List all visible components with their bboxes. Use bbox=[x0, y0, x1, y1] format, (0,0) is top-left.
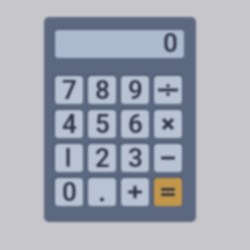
staticText: 8 bbox=[95, 76, 110, 103]
button[interactable]: Minus bbox=[154, 144, 182, 172]
button[interactable]: 8 bbox=[88, 76, 116, 104]
button[interactable]: Display bbox=[55, 30, 184, 58]
staticText: 2 bbox=[95, 144, 110, 171]
button[interactable]: Plus bbox=[121, 178, 149, 206]
button[interactable]: 9 bbox=[121, 76, 149, 104]
button[interactable]: 5 bbox=[88, 110, 116, 138]
staticText: 0 bbox=[163, 30, 178, 56]
button[interactable]: 6 bbox=[121, 110, 149, 138]
button[interactable]: 2 bbox=[88, 144, 116, 172]
staticText: 6 bbox=[128, 110, 143, 137]
button[interactable]: Divide bbox=[154, 76, 182, 104]
button[interactable]: 0 bbox=[55, 178, 83, 206]
button[interactable]: Equals bbox=[154, 178, 182, 206]
staticText: 7 bbox=[62, 76, 77, 103]
button[interactable]: 1 bbox=[55, 144, 83, 172]
button[interactable]: Decimal point bbox=[88, 178, 116, 206]
staticText: 5 bbox=[95, 110, 110, 137]
button[interactable]: 7 bbox=[55, 76, 83, 104]
button[interactable]: 3 bbox=[121, 144, 149, 172]
staticText: 0 bbox=[62, 178, 77, 205]
staticText: 4 bbox=[62, 110, 77, 137]
staticText: 9 bbox=[128, 76, 143, 103]
staticText: 3 bbox=[128, 144, 143, 171]
button[interactable]: 4 bbox=[55, 110, 83, 138]
button[interactable]: Multiply bbox=[154, 110, 182, 138]
